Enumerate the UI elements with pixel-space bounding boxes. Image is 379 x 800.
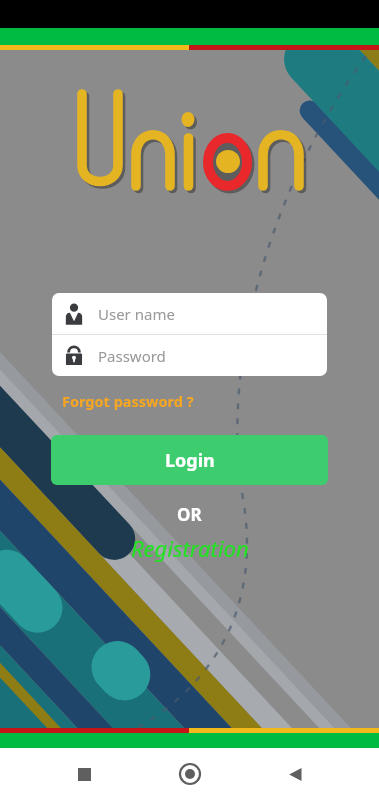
button[interactable]: Password [52,335,327,376]
button[interactable]: Back [273,752,317,796]
button[interactable]: User name [52,293,327,334]
staticText: Registration [131,533,249,563]
button[interactable]: Home [168,752,212,796]
staticText: Login [165,448,215,473]
staticText: Password [98,346,166,366]
staticText: OR [177,503,202,526]
staticText: Forgot password ? [62,391,194,411]
button[interactable]: Registration [131,533,249,563]
button[interactable]: Login [51,435,328,485]
button[interactable]: Forgot password ? [62,391,194,411]
button[interactable]: Recent apps [62,752,106,796]
staticText: User name [98,304,175,324]
